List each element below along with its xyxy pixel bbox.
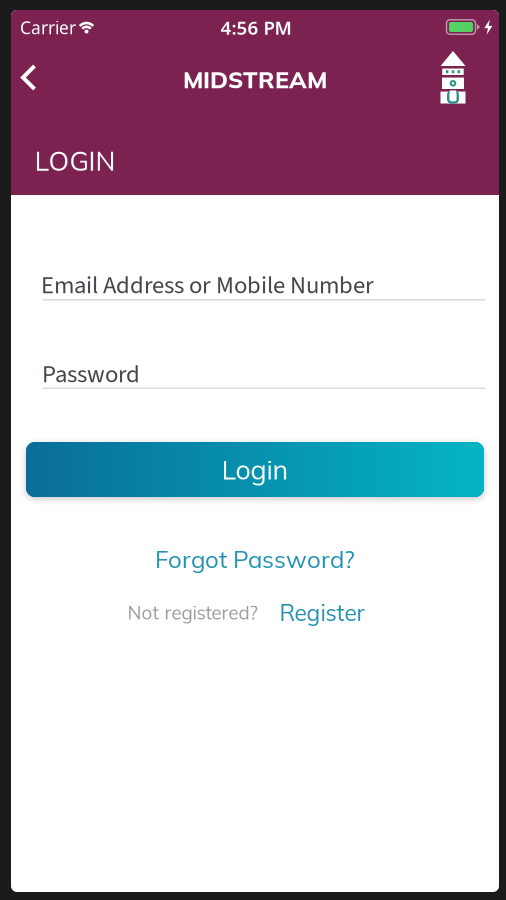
staticText: Forgot Password?	[155, 544, 355, 574]
button[interactable]: Login	[26, 442, 484, 497]
staticText: Email Address or Mobile Number	[41, 268, 374, 303]
button[interactable]: Register	[279, 598, 364, 627]
staticText: Carrier	[20, 16, 76, 39]
staticText: Password	[42, 357, 140, 392]
staticText: Login	[221, 453, 288, 486]
staticText: 4:56 PM	[220, 15, 291, 40]
staticText: LOGIN	[34, 144, 115, 177]
staticText: Not registered?	[127, 601, 257, 624]
staticText: MIDSTREAM	[183, 65, 327, 94]
button[interactable]: Back	[12, 57, 46, 97]
staticText: Register	[279, 598, 364, 627]
button[interactable]: Forgot Password?	[155, 544, 355, 574]
